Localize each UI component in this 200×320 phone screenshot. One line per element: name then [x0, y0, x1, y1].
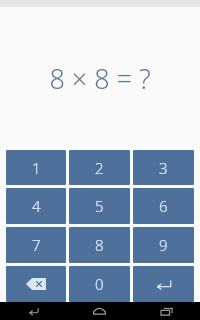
- button[interactable]: 8: [69, 227, 130, 263]
- button[interactable]: 0: [69, 266, 130, 302]
- button[interactable]: 1: [6, 150, 66, 185]
- button[interactable]: Back: [0, 302, 66, 320]
- button[interactable]: 5: [69, 188, 130, 224]
- button[interactable]: 9: [133, 227, 194, 263]
- button[interactable]: 4: [6, 188, 66, 224]
- staticText: 6: [159, 196, 168, 216]
- button[interactable]: 7: [6, 227, 66, 263]
- button[interactable]: 2: [69, 150, 130, 185]
- button[interactable]: 3: [133, 150, 194, 185]
- staticText: 4: [32, 196, 41, 216]
- staticText: 9: [159, 235, 168, 255]
- button[interactable]: Home: [66, 302, 133, 320]
- staticText: 8 × 8 = ?: [49, 60, 151, 97]
- button[interactable]: Enter: [133, 266, 194, 302]
- staticText: 0: [95, 274, 104, 294]
- staticText: 5: [95, 196, 104, 216]
- button[interactable]: Recents: [133, 302, 200, 320]
- staticText: 1: [32, 158, 41, 178]
- staticText: 2: [95, 158, 104, 178]
- staticText: 7: [32, 235, 41, 255]
- staticText: 8: [95, 235, 104, 255]
- button[interactable]: 6: [133, 188, 194, 224]
- staticText: 3: [159, 158, 168, 178]
- button[interactable]: Backspace: [6, 266, 66, 302]
